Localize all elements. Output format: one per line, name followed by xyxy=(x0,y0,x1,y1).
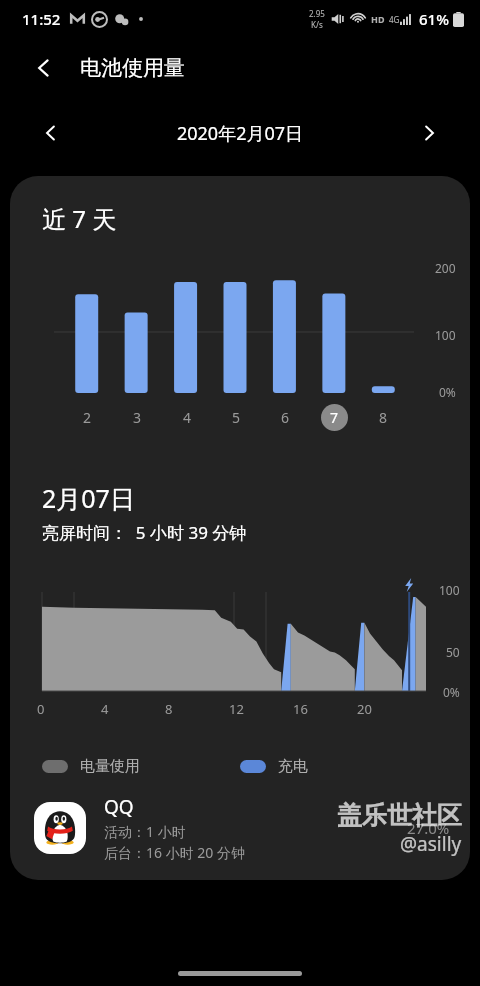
staticText: @asilly xyxy=(400,831,462,857)
button[interactable]: 3 xyxy=(124,404,151,431)
staticText: 后台：16 小时 20 分钟 xyxy=(104,843,245,862)
staticText: 2.95 xyxy=(309,8,325,19)
button[interactable]: 8 xyxy=(370,404,397,431)
staticText: 电量使用 xyxy=(80,757,140,776)
button[interactable]: QQ xyxy=(10,794,470,862)
button[interactable]: 7 xyxy=(321,404,348,431)
staticText: 2 xyxy=(83,408,92,427)
staticText: HD xyxy=(371,13,385,25)
staticText: 100 xyxy=(439,582,460,598)
button[interactable]: 6 xyxy=(272,404,299,431)
staticText: 16 xyxy=(293,700,308,718)
staticText: 8 xyxy=(379,408,388,427)
button[interactable]: 4 xyxy=(174,404,201,431)
staticText: 3 xyxy=(133,408,142,427)
button[interactable]: Back xyxy=(24,48,64,88)
staticText: 4 xyxy=(101,700,109,718)
staticText: 活动：1 小时 xyxy=(104,822,186,841)
staticText: 5 xyxy=(232,408,241,427)
staticText: QQ xyxy=(104,794,134,820)
staticText: 11:52 xyxy=(22,9,61,29)
staticText: 12 xyxy=(229,700,244,718)
staticText: 0% xyxy=(443,684,460,700)
staticText: 电池使用量 xyxy=(80,55,185,81)
staticText: 2月07日 xyxy=(42,481,135,515)
staticText: 0% xyxy=(439,384,456,400)
staticText: 盖乐世社区 xyxy=(337,800,462,831)
staticText: 4G xyxy=(389,14,400,25)
button[interactable]: 2 xyxy=(74,404,101,431)
staticText: 4 xyxy=(183,408,192,427)
staticText: 20 xyxy=(357,700,372,718)
staticText: 0 xyxy=(37,700,45,718)
staticText: 近 7 天 xyxy=(42,202,117,235)
staticText: 2020年2月07日 xyxy=(70,121,410,146)
staticText: 200 xyxy=(435,260,456,276)
button[interactable]: 5 xyxy=(223,404,250,431)
button[interactable]: 电量使用 xyxy=(42,757,140,776)
staticText: 8 xyxy=(165,700,173,718)
staticText: 61% xyxy=(419,9,449,29)
staticText: 100 xyxy=(435,327,456,343)
button[interactable]: Previous day xyxy=(32,114,70,152)
staticText: 亮屏时间： 5 小时 39 分钟 xyxy=(42,521,247,544)
staticText: 6 xyxy=(281,408,290,427)
staticText: 7 xyxy=(330,408,339,427)
button[interactable]: 充电 xyxy=(240,757,308,776)
staticText: 50 xyxy=(446,644,460,660)
staticText: K/s xyxy=(311,19,323,30)
staticText: 27.0% xyxy=(407,818,450,838)
button[interactable]: Next day xyxy=(410,114,448,152)
staticText: 充电 xyxy=(278,757,308,776)
